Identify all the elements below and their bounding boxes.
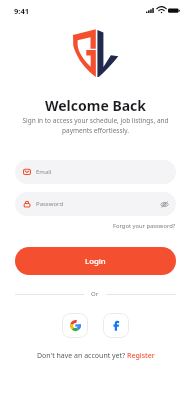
button[interactable]: Forgot your password? (113, 222, 176, 230)
button[interactable]: Login (15, 247, 176, 275)
button[interactable]: Register (127, 351, 155, 361)
staticText: Or (91, 290, 99, 298)
button[interactable]: Sign in with Google (62, 313, 88, 338)
staticText: Welcome Back (0, 96, 191, 115)
staticText: Register (127, 351, 155, 361)
staticText: Email (36, 168, 52, 176)
staticText: Password (36, 200, 64, 208)
staticText: 9:41 (14, 6, 30, 16)
staticText: Forgot your password? (113, 222, 176, 230)
button[interactable]: Sign in with Facebook (103, 313, 129, 338)
button[interactable]: Email (15, 160, 176, 184)
staticText: Sign in to access your schedule, job lis… (14, 116, 177, 135)
staticText: Don't have an account yet? (37, 351, 127, 361)
staticText: Login (85, 256, 106, 267)
button[interactable]: Password (15, 192, 176, 216)
button[interactable]: Show password (159, 199, 169, 209)
